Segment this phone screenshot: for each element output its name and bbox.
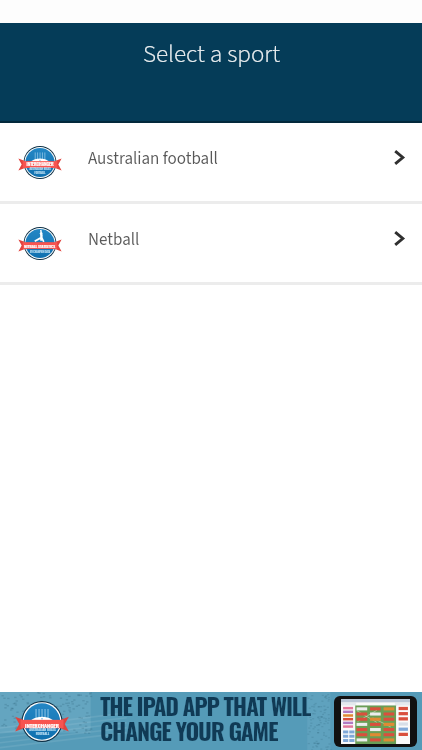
other: Open Netball <box>394 231 404 246</box>
staticText: Select a sport <box>143 36 280 72</box>
staticText: AUSTRALIAN RULES FOOTBALL <box>29 727 56 736</box>
staticText: THE IPAD APP THAT WILL <box>100 688 311 723</box>
button[interactable]: INTERCHANGER <box>0 123 422 201</box>
button[interactable]: Advertisement: the iPad app that will ch… <box>0 692 422 750</box>
other: Open Australian football <box>394 150 404 165</box>
button[interactable]: NETBALL STATISTICS <box>0 204 422 282</box>
staticText: Australian football <box>88 147 218 171</box>
staticText: INTERCHANGER <box>25 721 59 729</box>
staticText: NETBALL STATISTICS <box>24 243 56 249</box>
staticText: Netball <box>88 228 140 252</box>
staticText: BY CHAMPION DATA <box>30 250 51 254</box>
staticText: CHANGE YOUR GAME <box>100 713 278 748</box>
staticText: INTERCHANGER <box>26 161 54 168</box>
staticText: AUSTRALIAN RULES FOOTBALL <box>29 167 51 175</box>
